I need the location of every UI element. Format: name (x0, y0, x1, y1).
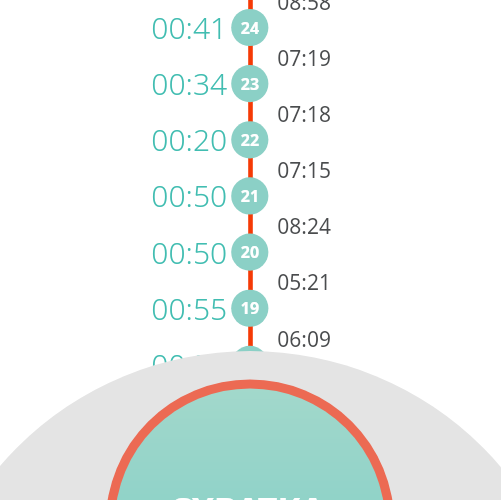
button[interactable]: СХВАТКА (105, 379, 394, 500)
button[interactable] (100, 336, 400, 392)
button[interactable] (100, 111, 400, 167)
button[interactable] (100, 280, 400, 336)
button[interactable] (100, 224, 400, 280)
button[interactable] (100, 55, 400, 111)
button[interactable] (100, 0, 400, 56)
button[interactable] (100, 167, 400, 223)
